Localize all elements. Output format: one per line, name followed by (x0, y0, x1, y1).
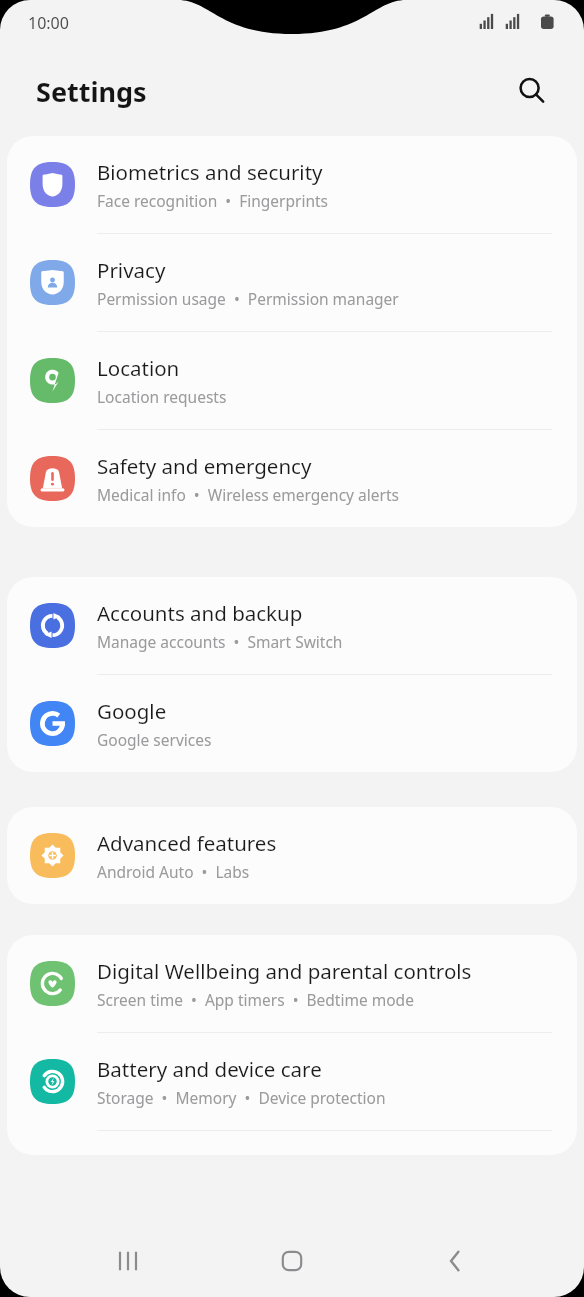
staticText: Medical info • Wireless emergency alerts (97, 484, 399, 505)
button[interactable]: Privacy (7, 234, 577, 331)
button[interactable]: Accounts and backup (7, 577, 577, 674)
staticText: Privacy (97, 256, 166, 284)
staticText: Advanced features (97, 829, 277, 857)
button[interactable]: Home (256, 1225, 328, 1297)
staticText: Biometrics and security (97, 158, 323, 186)
staticText: Accounts and backup (97, 599, 303, 627)
staticText: Location requests (97, 386, 227, 407)
staticText: Storage • Memory • Device protection (97, 1087, 386, 1108)
button[interactable]: Google (7, 675, 577, 772)
button[interactable]: Digital Wellbeing and parental controls (7, 935, 577, 1032)
button[interactable]: Search (505, 64, 559, 118)
button[interactable]: Safety and emergency (7, 430, 577, 527)
staticText: Settings (36, 73, 147, 110)
button[interactable]: Location (7, 332, 577, 429)
staticText: Android Auto • Labs (97, 861, 250, 882)
staticText: Manage accounts • Smart Switch (97, 631, 343, 652)
staticText: Permission usage • Permission manager (97, 288, 399, 309)
button[interactable]: Biometrics and security (7, 136, 577, 233)
staticText: Face recognition • Fingerprints (97, 190, 329, 211)
staticText: Google services (97, 729, 212, 750)
staticText: Battery and device care (97, 1055, 322, 1083)
button[interactable]: Battery and device care (7, 1033, 577, 1130)
staticText: Location (97, 354, 180, 382)
staticText: Google (97, 697, 167, 725)
staticText: Safety and emergency (97, 452, 312, 480)
button[interactable]: Advanced features (7, 807, 577, 904)
staticText: Screen time • App timers • Bedtime mode (97, 989, 414, 1010)
staticText: Digital Wellbeing and parental controls (97, 957, 472, 985)
button[interactable]: Recent apps (92, 1225, 164, 1297)
button[interactable]: Back (420, 1225, 492, 1297)
staticText: 10:00 (28, 12, 69, 34)
